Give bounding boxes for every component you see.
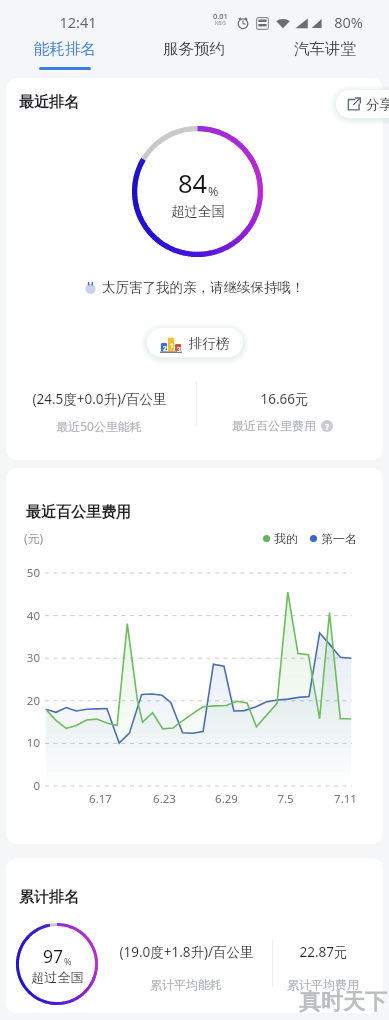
staticText: 累计平均费用 xyxy=(287,977,359,992)
staticText: (元) xyxy=(24,530,44,546)
staticText: 累计排名 xyxy=(19,888,79,907)
staticText: 80% xyxy=(334,12,363,32)
staticText: 超过全国 xyxy=(31,969,84,986)
staticText: ? xyxy=(325,420,330,432)
staticText: 0 xyxy=(33,778,40,794)
staticText: 16.66元 xyxy=(260,390,309,408)
staticText: 最近50公里能耗 xyxy=(56,418,142,434)
staticText: 累计平均能耗 xyxy=(150,977,222,992)
button[interactable]: 服务预约 xyxy=(139,34,249,74)
staticText: 6.23 xyxy=(153,791,176,807)
staticText: (19.0度+1.8升)/百公里 xyxy=(119,943,254,961)
staticText: 最近百公里费用 xyxy=(26,503,131,522)
staticText: 7.11 xyxy=(334,791,357,807)
staticText: 84 xyxy=(178,166,208,201)
staticText: 最近排名 xyxy=(19,93,79,112)
staticText: 最近百公里费用 xyxy=(232,418,316,433)
staticText: 服务预约 xyxy=(163,39,225,59)
staticText: 2 xyxy=(163,344,167,353)
staticText: 超过全国 xyxy=(171,203,225,220)
staticText: 10 xyxy=(26,735,40,751)
staticText: 真时天下 xyxy=(299,988,387,1016)
button[interactable]: 分享 xyxy=(336,90,389,118)
staticText: 我的 xyxy=(274,531,298,546)
staticText: 97 xyxy=(43,944,64,968)
staticText: 太厉害了我的亲，请继续保持哦！ xyxy=(102,279,305,296)
staticText: 汽车讲堂 xyxy=(294,39,356,59)
staticText: 0.01 xyxy=(213,11,228,21)
staticText: 22.87元 xyxy=(299,943,348,961)
staticText: 50 xyxy=(26,565,40,581)
staticText: 30 xyxy=(26,650,40,666)
staticText: 排行榜 xyxy=(189,335,230,352)
button[interactable]: 汽车讲堂 xyxy=(270,34,380,74)
staticText: (24.5度+0.0升)/百公里 xyxy=(32,390,167,408)
staticText: 6.17 xyxy=(89,791,112,807)
staticText: 12:41 xyxy=(59,12,97,32)
staticText: 1 xyxy=(170,341,174,350)
staticText: 40 xyxy=(26,608,40,624)
staticText: % xyxy=(208,183,219,200)
staticText: 分享 xyxy=(366,96,389,113)
staticText: 7.5 xyxy=(277,791,294,807)
staticText: 能耗排名 xyxy=(34,39,96,59)
button[interactable]: 能耗排名 xyxy=(10,34,120,74)
staticText: 第一名 xyxy=(321,531,357,546)
staticText: 20 xyxy=(26,693,40,709)
staticText: 6.29 xyxy=(215,791,238,807)
staticText: 3 xyxy=(177,345,181,354)
staticText: KB/S xyxy=(215,20,227,27)
button[interactable]: 2 xyxy=(147,328,243,357)
staticText: % xyxy=(64,955,72,967)
